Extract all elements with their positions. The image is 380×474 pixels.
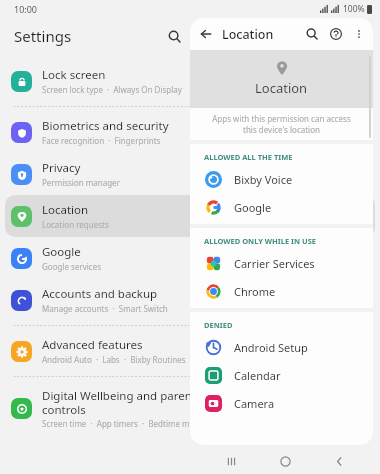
staticText: Advanced features	[42, 337, 143, 353]
button[interactable]: Home	[272, 448, 298, 474]
staticText: Carrier Services	[234, 256, 315, 271]
staticText: Privacy	[42, 160, 81, 176]
staticText: ALLOWED ALL THE TIME	[204, 152, 293, 162]
staticText: Google	[42, 244, 81, 260]
button[interactable]: Search	[300, 22, 324, 46]
button[interactable]: Carrier Services	[190, 249, 373, 277]
staticText: Location	[42, 202, 89, 218]
button[interactable]: Recent apps	[218, 448, 244, 474]
staticText: Face recognition · Fingerprints	[42, 135, 161, 146]
staticText: Screen lock type · Always On Display	[42, 84, 182, 95]
staticText: Accounts and backup	[42, 286, 158, 302]
staticText: Biometrics and security	[42, 118, 169, 134]
button[interactable]: Android Setup	[190, 333, 373, 361]
staticText: 100%	[343, 3, 365, 15]
button[interactable]: Lock screen	[5, 60, 375, 102]
staticText: Settings	[14, 26, 72, 46]
button[interactable]: Google	[5, 237, 375, 279]
staticText: Google	[234, 200, 272, 215]
button[interactable]: Google	[190, 193, 373, 221]
button[interactable]: Accounts and backup	[5, 279, 375, 321]
staticText: Lock screen	[42, 67, 106, 83]
staticText: Android Setup	[234, 340, 308, 355]
staticText: 10:00	[14, 3, 38, 15]
button[interactable]: Digital Wellbeing and parental controls	[5, 381, 375, 436]
button[interactable]: Advanced features	[5, 330, 375, 372]
button[interactable]: Chrome	[190, 277, 373, 305]
staticText: Screen time · App timers · Bedtime mode	[42, 418, 204, 429]
staticText: Bixby Voice	[234, 172, 293, 187]
staticText: Camera	[234, 396, 275, 411]
staticText: ALLOWED ONLY WHILE IN USE	[204, 236, 317, 246]
staticText: Google services	[42, 261, 102, 272]
staticText: Location requests	[42, 219, 109, 230]
button[interactable]: Biometrics and security	[5, 111, 375, 153]
staticText: Apps with this permission can access thi…	[212, 113, 351, 135]
button[interactable]: Location	[5, 195, 375, 237]
staticText: Calendar	[234, 368, 281, 383]
button[interactable]: Bixby Voice	[190, 165, 373, 193]
staticText: Digital Wellbeing and parental controls	[42, 388, 206, 417]
button[interactable]: Privacy	[5, 153, 375, 195]
button[interactable]: Back	[194, 22, 218, 46]
button[interactable]: Search settings	[160, 22, 188, 50]
button[interactable]: Help	[324, 22, 348, 46]
button[interactable]: More options	[348, 23, 370, 45]
staticText: Manage accounts · Smart Switch	[42, 303, 168, 314]
staticText: Chrome	[234, 284, 276, 299]
staticText: Android Auto · Labs · Bixby Routines	[42, 354, 186, 365]
staticText: Location	[222, 26, 274, 43]
button[interactable]: Camera	[190, 389, 373, 417]
staticText: Location	[255, 79, 308, 97]
button[interactable]: Back	[326, 448, 352, 474]
staticText: DENIED	[204, 320, 233, 330]
button[interactable]: Calendar	[190, 361, 373, 389]
staticText: Permission manager	[42, 177, 120, 188]
